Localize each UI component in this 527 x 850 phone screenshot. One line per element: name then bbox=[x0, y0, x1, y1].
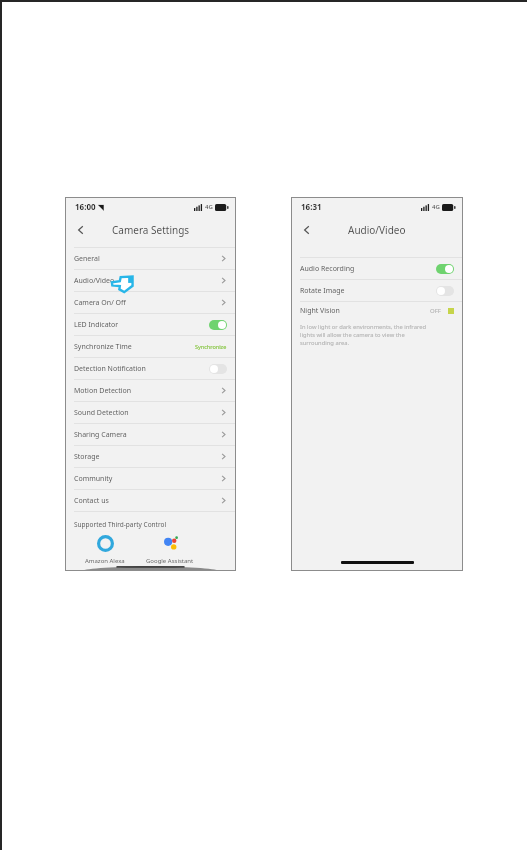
staticText: Night Vision bbox=[300, 306, 340, 316]
button[interactable]: General bbox=[65, 248, 236, 269]
button[interactable]: Camera On/ Off bbox=[65, 292, 236, 313]
button[interactable]: LED Indicator bbox=[65, 314, 236, 335]
staticText: Amazon Alexa bbox=[85, 557, 125, 565]
staticText: Motion Detection bbox=[74, 386, 132, 396]
button[interactable] bbox=[209, 320, 227, 330]
button[interactable]: Back bbox=[298, 221, 316, 239]
button[interactable]: Audio Recording bbox=[291, 258, 463, 279]
staticText: General bbox=[74, 254, 100, 264]
staticText: Audio/Video bbox=[348, 223, 406, 237]
button[interactable]: Synchronize Time bbox=[65, 336, 236, 357]
button[interactable]: Back bbox=[72, 221, 90, 239]
button[interactable] bbox=[436, 286, 454, 296]
staticText: Synchronize bbox=[195, 343, 227, 350]
staticText: 4G bbox=[205, 203, 213, 211]
staticText: Audio Recording bbox=[300, 264, 355, 274]
staticText: 4G bbox=[432, 203, 440, 211]
staticText: Detection Notification bbox=[74, 364, 146, 374]
button[interactable]: Storage bbox=[65, 446, 236, 467]
button[interactable]: Rotate Image bbox=[291, 280, 463, 301]
staticText: Audio/Video bbox=[74, 276, 115, 286]
staticText: OFF bbox=[430, 307, 441, 315]
staticText: Camera On/ Off bbox=[74, 298, 126, 308]
staticText: Camera Settings bbox=[112, 223, 190, 237]
button[interactable]: Sharing Camera bbox=[65, 424, 236, 445]
button[interactable]: Contact us bbox=[65, 490, 236, 511]
staticText: 16:00 ◥ bbox=[75, 201, 104, 212]
button[interactable] bbox=[209, 364, 227, 374]
button[interactable]: Sound Detection bbox=[65, 402, 236, 423]
staticText: Sound Detection bbox=[74, 408, 129, 418]
staticText: Rotate Image bbox=[300, 286, 345, 296]
button[interactable]: Detection Notification bbox=[65, 358, 236, 379]
button[interactable]: Night Vision bbox=[291, 302, 463, 320]
staticText: In low light or dark environments, the i… bbox=[300, 323, 435, 347]
staticText: Synchronize Time bbox=[74, 342, 132, 352]
staticText: Google Assistant bbox=[146, 557, 194, 565]
staticText: 16:31 bbox=[301, 201, 322, 212]
staticText: Supported Third-party Control bbox=[74, 520, 167, 529]
button[interactable]: Community bbox=[65, 468, 236, 489]
button[interactable]: Audio/Video bbox=[65, 270, 236, 291]
staticText: Community bbox=[74, 474, 113, 484]
staticText: Sharing Camera bbox=[74, 430, 127, 440]
staticText: Storage bbox=[74, 452, 100, 462]
staticText: Contact us bbox=[74, 496, 109, 506]
button[interactable]: Motion Detection bbox=[65, 380, 236, 401]
button[interactable] bbox=[436, 264, 454, 274]
staticText: LED Indicator bbox=[74, 320, 119, 330]
